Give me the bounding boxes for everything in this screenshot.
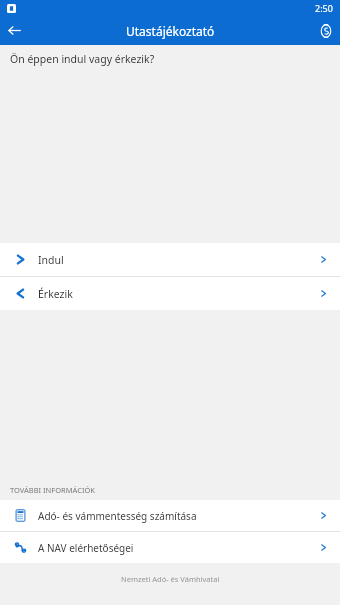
button[interactable]: Adó- és vámmentesség számítása [0,500,340,531]
staticText: Adó- és vámmentesség számítása [38,509,197,523]
staticText: Utastájékoztató [126,23,215,39]
staticText: Érkezik [38,287,73,301]
staticText: Nemzeti Adó- és Vámhivatal [121,574,220,584]
staticText: 2:50 [315,2,333,14]
button[interactable]: Érkezik [0,277,340,310]
staticText: TOVÁBBI INFORMÁCIÓK [10,485,95,495]
button[interactable]: Help [311,16,340,45]
staticText: Ön éppen indul vagy érkezik? [10,52,155,66]
button[interactable]: A NAV elérhetőségei [0,532,340,563]
staticText: A NAV elérhetőségei [38,541,134,555]
button[interactable]: Back [0,16,29,45]
button[interactable]: Indul [0,243,340,276]
staticText: Indul [38,253,64,267]
